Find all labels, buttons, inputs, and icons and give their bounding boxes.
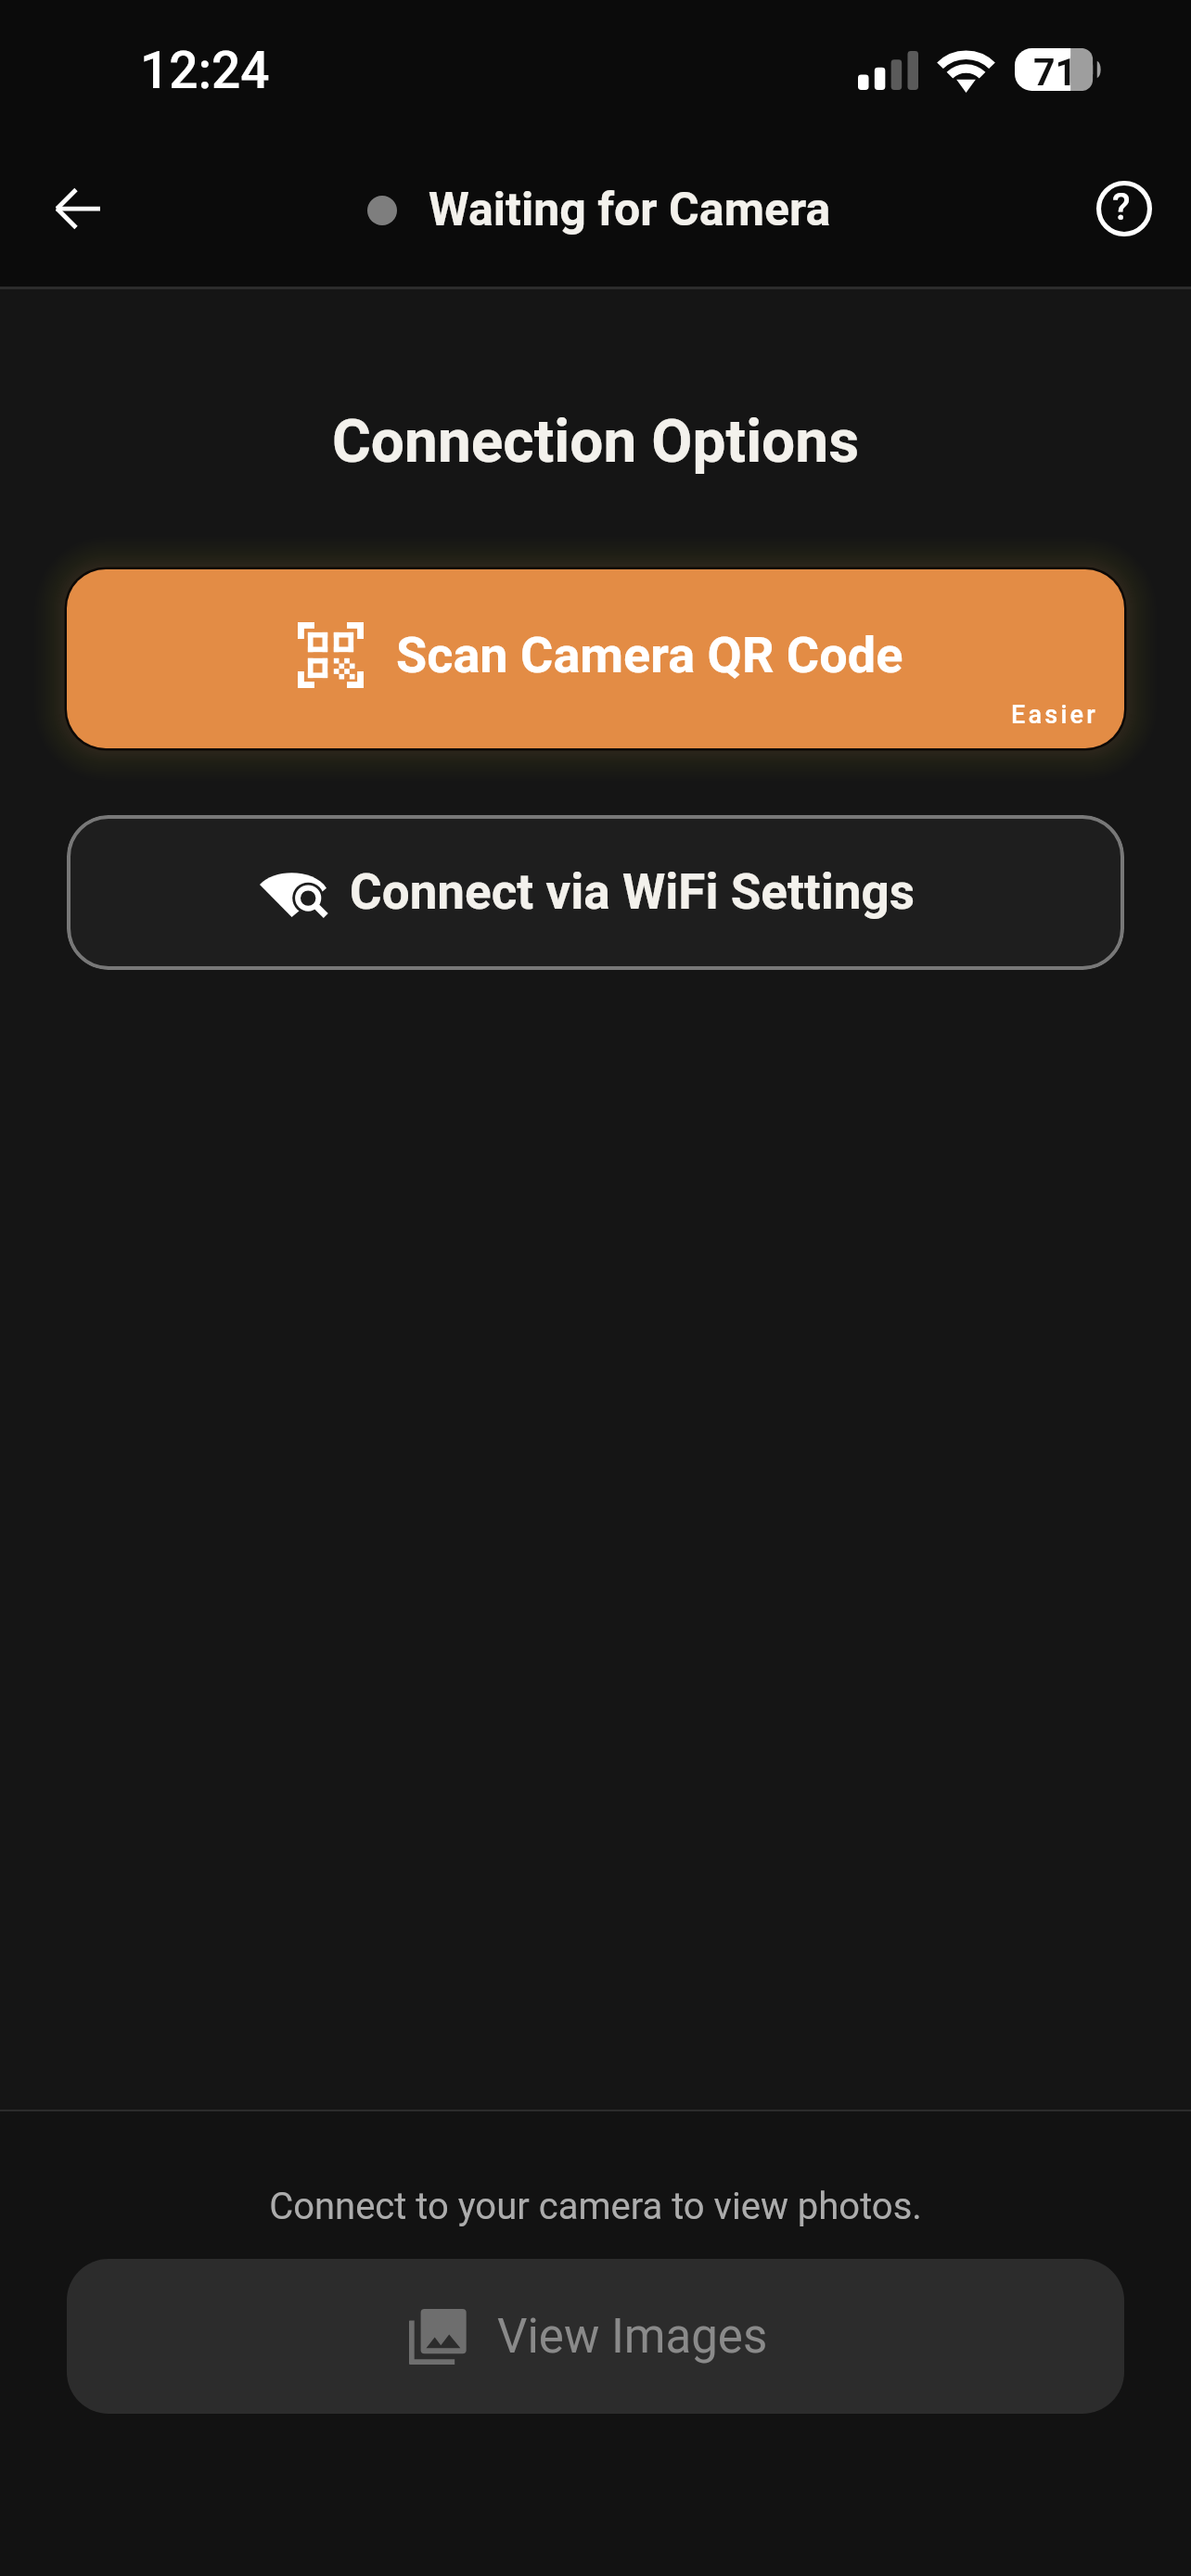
button[interactable]: View Images	[67, 2259, 1124, 2414]
staticText: 71	[1033, 50, 1078, 95]
staticText: Easier	[1011, 700, 1098, 730]
staticText: Scan Camera QR Code	[396, 626, 903, 684]
button[interactable]: Help	[1080, 164, 1169, 253]
staticText: 12:24	[140, 41, 270, 100]
staticText: View Images	[497, 2309, 768, 2365]
staticText: Waiting for Camera	[429, 183, 831, 237]
staticText: Connect via WiFi Settings	[350, 863, 916, 921]
button[interactable]: Scan Camera QR Code	[67, 569, 1124, 748]
staticText: Connect to your camera to view photos.	[0, 2185, 1191, 2228]
staticText: ?	[1112, 185, 1131, 229]
staticText: Connection Options	[0, 407, 1191, 477]
button[interactable]: Back	[33, 164, 122, 253]
button[interactable]: Connect via WiFi Settings	[67, 815, 1124, 970]
